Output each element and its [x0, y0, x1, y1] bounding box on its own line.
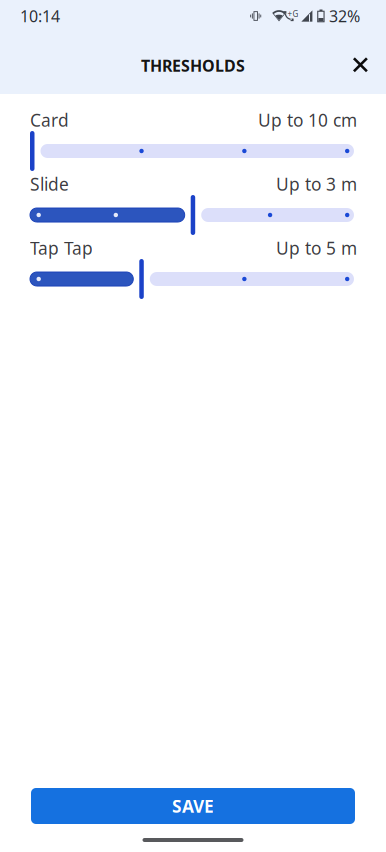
button[interactable]: SAVE	[30, 788, 354, 824]
staticText: +G	[288, 9, 299, 19]
staticText: Slide	[30, 172, 69, 195]
staticText: THRESHOLDS	[141, 55, 245, 76]
button[interactable]: Card threshold, Up to 10 cm	[30, 131, 354, 171]
button[interactable]: Slide threshold, Up to 3 m	[30, 195, 354, 235]
staticText: SAVE	[172, 794, 214, 817]
button[interactable]: Tap Tap threshold, Up to 5 m	[30, 259, 354, 299]
staticText: Card	[30, 108, 69, 131]
staticText: 32%	[329, 5, 360, 27]
staticText: 10:14	[20, 5, 60, 27]
staticText: Up to 3 m	[276, 172, 357, 195]
staticText: Up to 5 m	[276, 236, 357, 259]
staticText: Tap Tap	[30, 236, 93, 259]
staticText: Up to 10 cm	[258, 108, 357, 131]
button[interactable]: Close	[336, 41, 384, 89]
